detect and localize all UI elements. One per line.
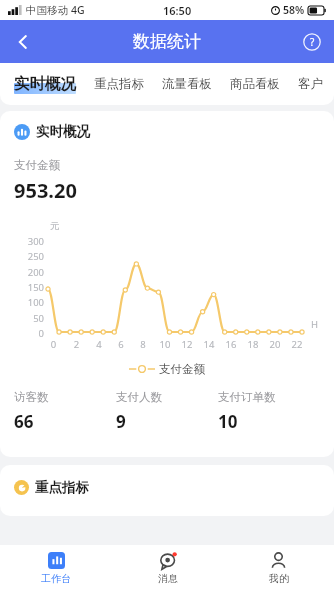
staticText: 250 [14, 250, 44, 263]
staticText: 6 [110, 338, 132, 351]
staticText: 实时概况 [36, 123, 90, 140]
staticText: 重点指标 [35, 479, 89, 496]
staticText: 工作台 [41, 572, 71, 585]
staticText: 14 [198, 338, 220, 351]
button[interactable]: 客户 [298, 76, 323, 92]
staticText: 953.20 [14, 177, 77, 204]
staticText: 20 [264, 338, 286, 351]
button[interactable]: 消息 [112, 545, 223, 591]
staticText: 10 [218, 410, 238, 433]
staticText: 8 [132, 338, 154, 351]
staticText: 重点指标 [94, 76, 144, 92]
staticText: H [311, 318, 319, 331]
staticText: 支付金额 [159, 362, 205, 376]
staticText: 12 [176, 338, 198, 351]
button[interactable]: Help [295, 25, 329, 59]
staticText: 150 [14, 281, 44, 294]
staticText: 支付金额 [14, 158, 60, 172]
staticText: 消息 [158, 572, 178, 585]
staticText: 数据统计 [133, 31, 201, 52]
staticText: 支付订单数 [218, 390, 276, 404]
staticText: 16:50 [163, 3, 192, 18]
staticText: 4 [88, 338, 110, 351]
staticText: 10 [154, 338, 176, 351]
staticText: 客户 [298, 76, 323, 92]
button[interactable]: 工作台 [0, 545, 112, 591]
staticText: 元 [50, 220, 60, 232]
button[interactable]: 支付人数 [116, 390, 218, 433]
staticText: 4G [71, 3, 85, 17]
staticText: 22 [286, 338, 308, 351]
staticText: 66 [14, 410, 34, 433]
staticText: 58% [283, 3, 305, 17]
staticText: 100 [14, 296, 44, 309]
staticText: 支付人数 [116, 390, 162, 404]
staticText: 实时概况 [14, 74, 76, 94]
button[interactable]: Back [4, 23, 42, 61]
button[interactable]: 实时概况 [14, 74, 76, 94]
button[interactable]: 商品看板 [230, 76, 280, 92]
staticText: 16 [220, 338, 242, 351]
staticText: 50 [14, 312, 44, 325]
staticText: ? [310, 35, 315, 49]
staticText: 访客数 [14, 390, 49, 404]
button[interactable]: 重点指标 [94, 76, 144, 92]
staticText: 18 [242, 338, 264, 351]
staticText: 300 [14, 235, 44, 248]
button[interactable]: 支付订单数 [218, 390, 320, 433]
staticText: 0 [42, 338, 65, 351]
staticText: 流量看板 [162, 76, 212, 92]
staticText: 2 [65, 338, 88, 351]
staticText: 中国移动 [26, 4, 68, 17]
staticText: 0 [14, 327, 44, 340]
staticText: 200 [14, 266, 44, 279]
staticText: 商品看板 [230, 76, 280, 92]
staticText: 9 [116, 410, 126, 433]
button[interactable]: 流量看板 [162, 76, 212, 92]
button[interactable]: 访客数 [14, 390, 116, 433]
staticText: 我的 [269, 572, 289, 585]
button[interactable]: 我的 [223, 545, 334, 591]
